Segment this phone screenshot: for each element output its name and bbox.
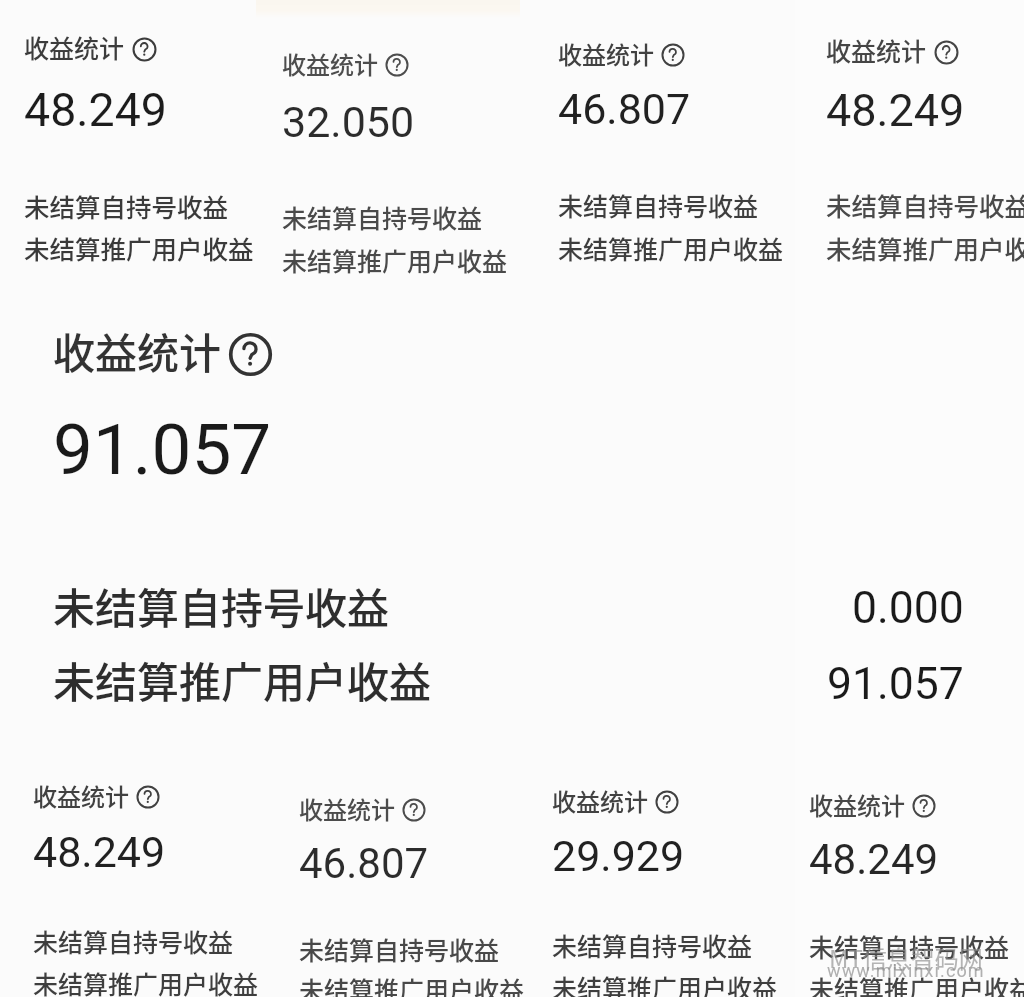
staticText: MT信息智码网 — [829, 940, 983, 975]
staticText: 收益统计 — [826, 32, 1024, 68]
staticText: 48.249 — [24, 83, 256, 137]
staticText: 未结算自持号收益 — [33, 923, 263, 959]
staticText: 未结算推广用户收益 — [809, 970, 1024, 997]
button[interactable]: 收益统计 — [532, 765, 760, 979]
staticText: 未结算自持号收益 — [282, 199, 512, 235]
staticText: 未结算自持号收益 — [809, 928, 1024, 964]
staticText: 收益统计 — [299, 791, 527, 826]
button[interactable]: Help: about earnings statistics — [136, 785, 160, 809]
staticText: 收益统计 — [552, 783, 780, 818]
button[interactable]: Help: about earnings statistics — [934, 40, 959, 65]
staticText: 29.929 — [552, 831, 780, 881]
staticText: 未结算自持号收益 — [24, 187, 256, 224]
staticText: 91.057 — [53, 408, 272, 491]
button[interactable]: 收益统计 — [4, 11, 236, 299]
staticText: 0.000 — [852, 582, 964, 634]
staticText: 未结算自持号收益 — [299, 931, 527, 967]
button[interactable]: 收益统计 — [20, 310, 980, 730]
staticText: 91.057 — [827, 658, 964, 710]
button[interactable]: 收益统计 — [13, 760, 243, 979]
staticText: 46.807 — [299, 839, 527, 888]
staticText: 未结算推广用户收益 — [552, 969, 780, 997]
staticText: 未结算推广用户收益 — [299, 971, 527, 997]
staticText: www.mixinxi.com — [827, 960, 985, 981]
staticText: 32.050 — [282, 97, 512, 147]
button[interactable]: Help: about earnings statistics — [132, 37, 157, 62]
staticText: 收益统计 — [33, 778, 263, 813]
staticText: 46.807 — [558, 84, 788, 134]
staticText: 未结算推广用户收益 — [826, 229, 1024, 266]
staticText: 未结算自持号收益 — [552, 927, 780, 963]
staticText: 未结算推广用户收益 — [282, 242, 512, 278]
staticText: 收益统计 — [282, 46, 512, 81]
button[interactable]: 收益统计 — [789, 769, 1004, 979]
button[interactable]: Help: about earnings statistics — [655, 790, 679, 814]
staticText: 48.249 — [826, 84, 1024, 137]
staticText: 48.249 — [33, 827, 263, 877]
button[interactable]: Help: about earnings statistics — [661, 43, 685, 67]
staticText: 收益统计 — [24, 29, 256, 65]
staticText: 收益统计 — [809, 787, 1024, 822]
staticText: 未结算自持号收益 — [53, 575, 390, 636]
staticText: 收益统计 — [53, 320, 222, 381]
button[interactable]: Help: about earnings statistics — [385, 53, 409, 77]
button[interactable]: Help: about earnings statistics — [402, 798, 426, 822]
button[interactable]: Help: about earnings statistics — [912, 794, 936, 818]
staticText: 收益统计 — [558, 36, 788, 71]
staticText: 未结算推广用户收益 — [33, 965, 263, 997]
button[interactable]: 收益统计 — [279, 773, 507, 979]
button[interactable]: 收益统计 — [262, 28, 492, 318]
staticText: 未结算推广用户收益 — [558, 230, 788, 266]
staticText: 未结算推广用户收益 — [53, 649, 432, 710]
button[interactable]: 收益统计 — [806, 14, 1004, 304]
staticText: 未结算推广用户收益 — [24, 229, 256, 266]
staticText: 未结算自持号收益 — [558, 187, 788, 223]
staticText: 48.249 — [809, 835, 1024, 884]
button[interactable]: 收益统计 — [538, 18, 768, 308]
button[interactable]: Help: about earnings statistics — [228, 332, 273, 377]
staticText: 未结算自持号收益 — [826, 186, 1024, 223]
